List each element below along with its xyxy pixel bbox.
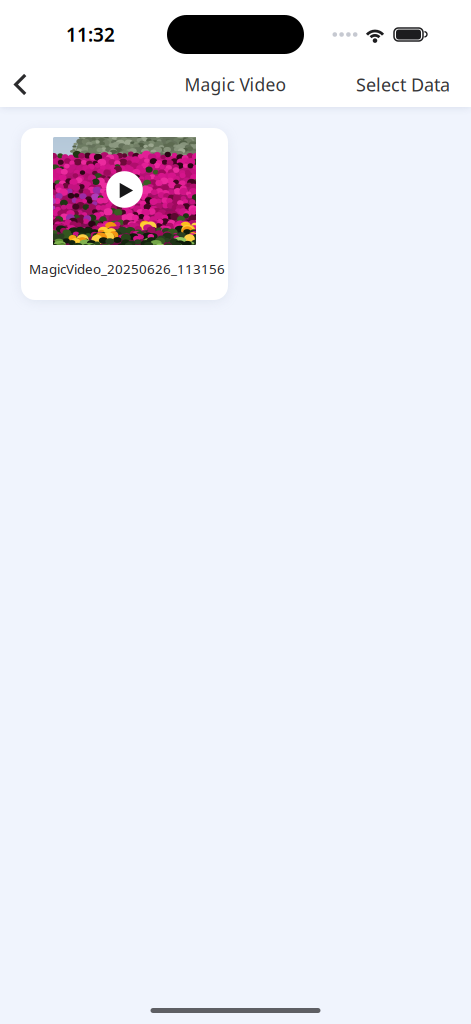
staticText: MagicVideo_20250626_113156 [29, 260, 225, 278]
button[interactable]: Back [0, 62, 41, 107]
staticText: 11:32 [66, 22, 115, 47]
staticText: Select Data [356, 72, 450, 96]
button[interactable]: Select Data [346, 62, 460, 107]
button[interactable]: MagicVideo_20250626_113156 [21, 128, 228, 300]
staticText: Magic Video [184, 73, 286, 96]
